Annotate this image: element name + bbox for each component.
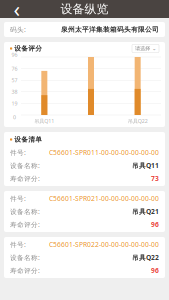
staticText: 件号: xyxy=(10,148,26,157)
staticText: 吊具Q21 xyxy=(132,207,159,216)
staticText: C56601-SPR022-00-00-00-00-00-00 xyxy=(49,240,159,249)
button[interactable]: Back xyxy=(6,0,28,18)
staticText: 设备纵览 xyxy=(60,2,108,16)
staticText: 0 xyxy=(13,114,16,121)
staticText: 19 xyxy=(11,100,17,107)
staticText: C56601-SPR021-00-00-00-00-00-00 xyxy=(49,194,159,203)
staticText: 设备清单 xyxy=(14,135,42,144)
staticText: 请选择 xyxy=(135,45,150,52)
button[interactable]: 件号: xyxy=(0,237,169,278)
staticText: 泉州太平洋集装箱码头有限公司 xyxy=(61,25,159,34)
staticText: ⌄ xyxy=(152,45,156,52)
staticText: C56601-SPR011-00-00-00-00-00-00 xyxy=(49,148,159,157)
staticText: 设备评分 xyxy=(14,44,42,53)
button[interactable]: 件号: xyxy=(0,191,169,232)
button[interactable]: 设备清单 xyxy=(0,132,169,186)
staticText: 吊具Q22 xyxy=(132,253,159,262)
staticText: 寿命评分: xyxy=(10,174,40,183)
staticText: 96 xyxy=(151,266,159,275)
staticText: 38 xyxy=(11,88,17,95)
staticText: ‹ xyxy=(13,0,20,23)
staticText: 码头: xyxy=(10,25,26,34)
staticText: 设备名称: xyxy=(10,207,40,216)
staticText: 设备名称: xyxy=(10,161,40,170)
staticText: 96 xyxy=(11,51,17,58)
button[interactable]: 请选择 xyxy=(132,44,159,52)
staticText: 寿命评分: xyxy=(10,220,40,229)
staticText: 设备名称: xyxy=(10,253,40,262)
staticText: 吊具Q11 xyxy=(34,117,54,125)
staticText: 件号: xyxy=(10,194,26,203)
staticText: 57 xyxy=(11,77,17,84)
staticText: 寿命评分: xyxy=(10,266,40,275)
staticText: 76 xyxy=(11,65,17,72)
staticText: 96 xyxy=(151,220,159,229)
staticText: 件号: xyxy=(10,240,26,249)
staticText: 73 xyxy=(151,174,159,183)
staticText: 吊具Q22 xyxy=(128,117,148,125)
staticText: 吊具Q11 xyxy=(132,161,159,170)
